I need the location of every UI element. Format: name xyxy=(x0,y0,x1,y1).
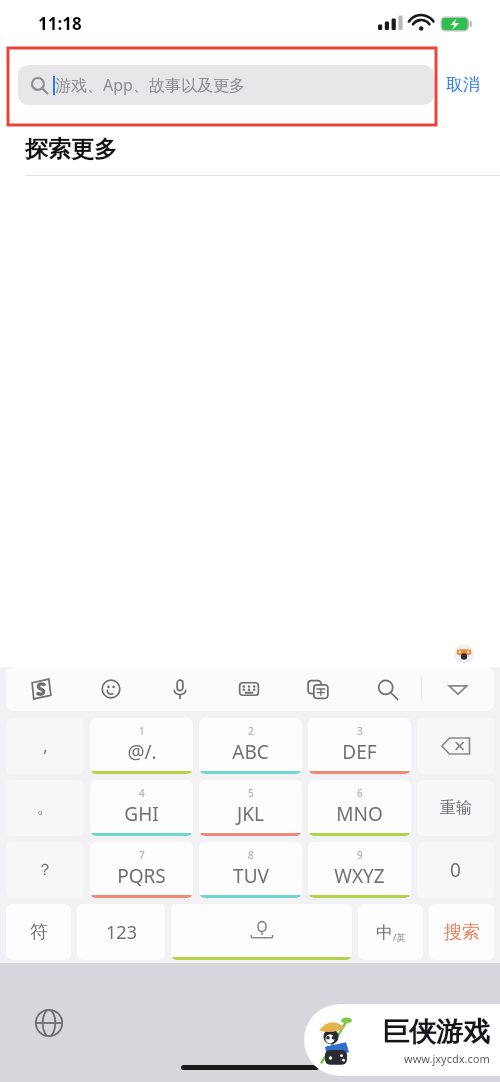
button[interactable]: 0 xyxy=(417,842,494,898)
button[interactable]: Change language xyxy=(32,1006,66,1040)
staticText: 7 xyxy=(139,848,145,862)
staticText: 探索更多 xyxy=(25,135,117,164)
button[interactable]: Backspace xyxy=(417,718,494,774)
button[interactable]: 5 xyxy=(199,780,302,836)
button[interactable]: 游戏、App、故事以及更多 xyxy=(18,65,434,105)
staticText: 游戏、App、故事以及更多 xyxy=(55,74,245,96)
staticText: TUV xyxy=(233,863,269,889)
staticText: GHI xyxy=(124,801,159,827)
button[interactable]: Keyboard xyxy=(214,667,283,711)
staticText: 。 xyxy=(37,798,53,818)
staticText: 3 xyxy=(357,724,363,738)
staticText: WXYZ xyxy=(334,863,385,889)
staticText: www.jxycdx.com xyxy=(404,1051,490,1066)
button[interactable]: 7 xyxy=(90,842,193,898)
button[interactable]: 6 xyxy=(308,780,411,836)
staticText: 11:18 xyxy=(38,12,82,35)
staticText: 2 xyxy=(248,724,254,738)
button[interactable]: 123 xyxy=(77,904,165,960)
staticText: 符 xyxy=(30,921,48,944)
button[interactable]: Translate xyxy=(283,667,352,711)
button[interactable]: 4 xyxy=(90,780,193,836)
button[interactable]: 8 xyxy=(199,842,302,898)
staticText: 0 xyxy=(450,857,461,883)
button[interactable]: 2 xyxy=(199,718,302,774)
button[interactable]: Search xyxy=(352,667,421,711)
button[interactable]: 中 xyxy=(358,904,423,960)
staticText: ？ xyxy=(37,860,53,880)
staticText: 9 xyxy=(357,848,363,862)
button[interactable]: ？ xyxy=(6,842,84,898)
button[interactable]: 取消 xyxy=(444,68,482,101)
button[interactable]: 搜索 xyxy=(429,904,494,960)
staticText: PQRS xyxy=(117,863,166,889)
staticText: 4 xyxy=(139,786,145,800)
staticText: 搜索 xyxy=(444,921,480,944)
staticText: MNO xyxy=(336,801,383,827)
button[interactable]: Hide keyboard xyxy=(422,667,494,711)
staticText: 1 xyxy=(139,724,145,738)
button[interactable]: 3 xyxy=(308,718,411,774)
button[interactable]: , xyxy=(6,718,84,774)
staticText: 123 xyxy=(106,920,137,945)
button[interactable]: 重输 xyxy=(417,780,494,836)
staticText: ABC xyxy=(232,739,269,765)
staticText: /英 xyxy=(393,931,406,943)
button[interactable]: 9 xyxy=(308,842,411,898)
staticText: JKL xyxy=(237,801,264,827)
staticText: 6 xyxy=(357,786,363,800)
button[interactable]: Voice input xyxy=(145,667,214,711)
button[interactable]: Space, voice input xyxy=(171,904,352,960)
staticText: 取消 xyxy=(446,74,480,95)
staticText: @/. xyxy=(127,739,157,765)
button[interactable]: Emoji xyxy=(76,667,145,711)
staticText: 重输 xyxy=(440,798,472,818)
staticText: 巨侠游戏 xyxy=(382,1015,490,1049)
button[interactable]: Sogou xyxy=(6,667,76,711)
staticText: 中 xyxy=(376,922,393,943)
button[interactable]: 符 xyxy=(6,904,71,960)
staticText: , xyxy=(43,735,48,757)
button[interactable]: 1 xyxy=(90,718,193,774)
staticText: 8 xyxy=(248,848,254,862)
button[interactable]: 。 xyxy=(6,780,84,836)
staticText: 5 xyxy=(248,786,254,800)
button[interactable]: Expression xyxy=(452,642,476,666)
staticText: DEF xyxy=(342,739,377,765)
